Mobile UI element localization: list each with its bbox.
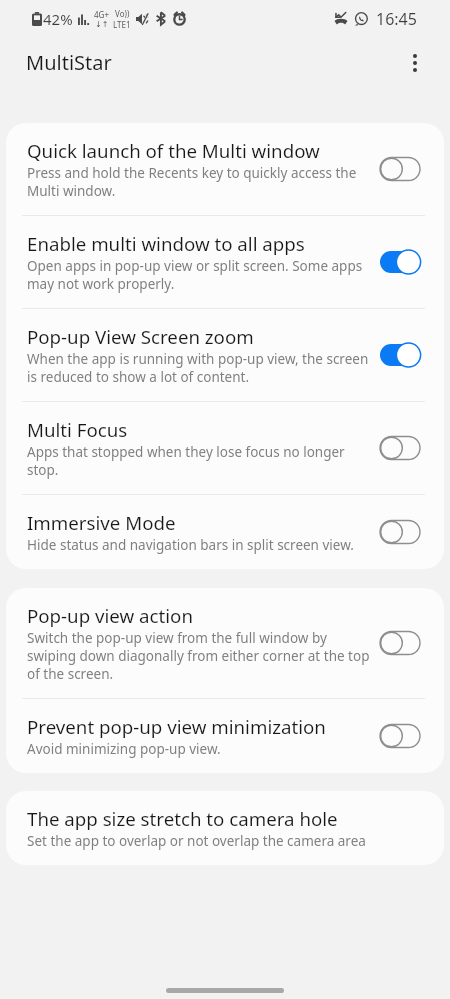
staticText: Pop-up view action	[27, 603, 193, 628]
staticText: Quick launch of the Multi window	[27, 138, 320, 163]
staticText: Multi Focus	[27, 417, 128, 442]
button[interactable]: Toggle off	[356, 426, 444, 470]
button[interactable]: Toggle off	[356, 714, 444, 758]
staticText: When the app is running with pop-up view…	[27, 350, 377, 386]
button[interactable]: Enable multi window to all apps	[6, 216, 444, 308]
button[interactable]: Toggle off	[356, 510, 444, 554]
staticText: Vo))	[115, 8, 130, 19]
button[interactable]: Pop-up View Screen zoom	[6, 309, 444, 401]
staticText: 4G+	[94, 9, 109, 20]
staticText: Open apps in pop-up view or split screen…	[27, 257, 377, 293]
staticText: Avoid minimizing pop-up view.	[27, 740, 221, 758]
staticText: Apps that stopped when they lose focus n…	[27, 443, 377, 479]
staticText: Switch the pop-up view from the full win…	[27, 629, 377, 683]
button[interactable]: Multi Focus	[6, 402, 444, 494]
button[interactable]: More options	[394, 42, 436, 84]
staticText: Pop-up View Screen zoom	[27, 324, 254, 349]
staticText: Immersive Mode	[27, 510, 176, 535]
button[interactable]: Toggle off	[356, 621, 444, 665]
button[interactable]: The app size stretch to camera hole	[6, 791, 444, 865]
button[interactable]: Toggle on	[356, 240, 444, 284]
button[interactable]: Immersive Mode	[6, 495, 444, 569]
button[interactable]: Pop-up view action	[6, 588, 444, 698]
button[interactable]: Toggle on	[356, 333, 444, 377]
staticText: The app size stretch to camera hole	[27, 806, 338, 831]
button[interactable]: Quick launch of the Multi window	[6, 123, 444, 215]
staticText: ↓↑	[95, 20, 109, 29]
staticText: MultiStar	[26, 49, 112, 76]
staticText: LTE1	[113, 19, 131, 30]
staticText: Press and hold the Recents key to quickl…	[27, 164, 377, 200]
button[interactable]: Toggle off	[356, 147, 444, 191]
staticText: 42%	[43, 9, 73, 29]
staticText: Hide status and navigation bars in split…	[27, 536, 354, 554]
staticText: Set the app to overlap or not overlap th…	[27, 832, 366, 850]
staticText: Prevent pop-up view minimization	[27, 714, 326, 739]
staticText: Enable multi window to all apps	[27, 231, 305, 256]
button[interactable]: Prevent pop-up view minimization	[6, 699, 444, 773]
staticText: 16:45	[376, 8, 417, 30]
